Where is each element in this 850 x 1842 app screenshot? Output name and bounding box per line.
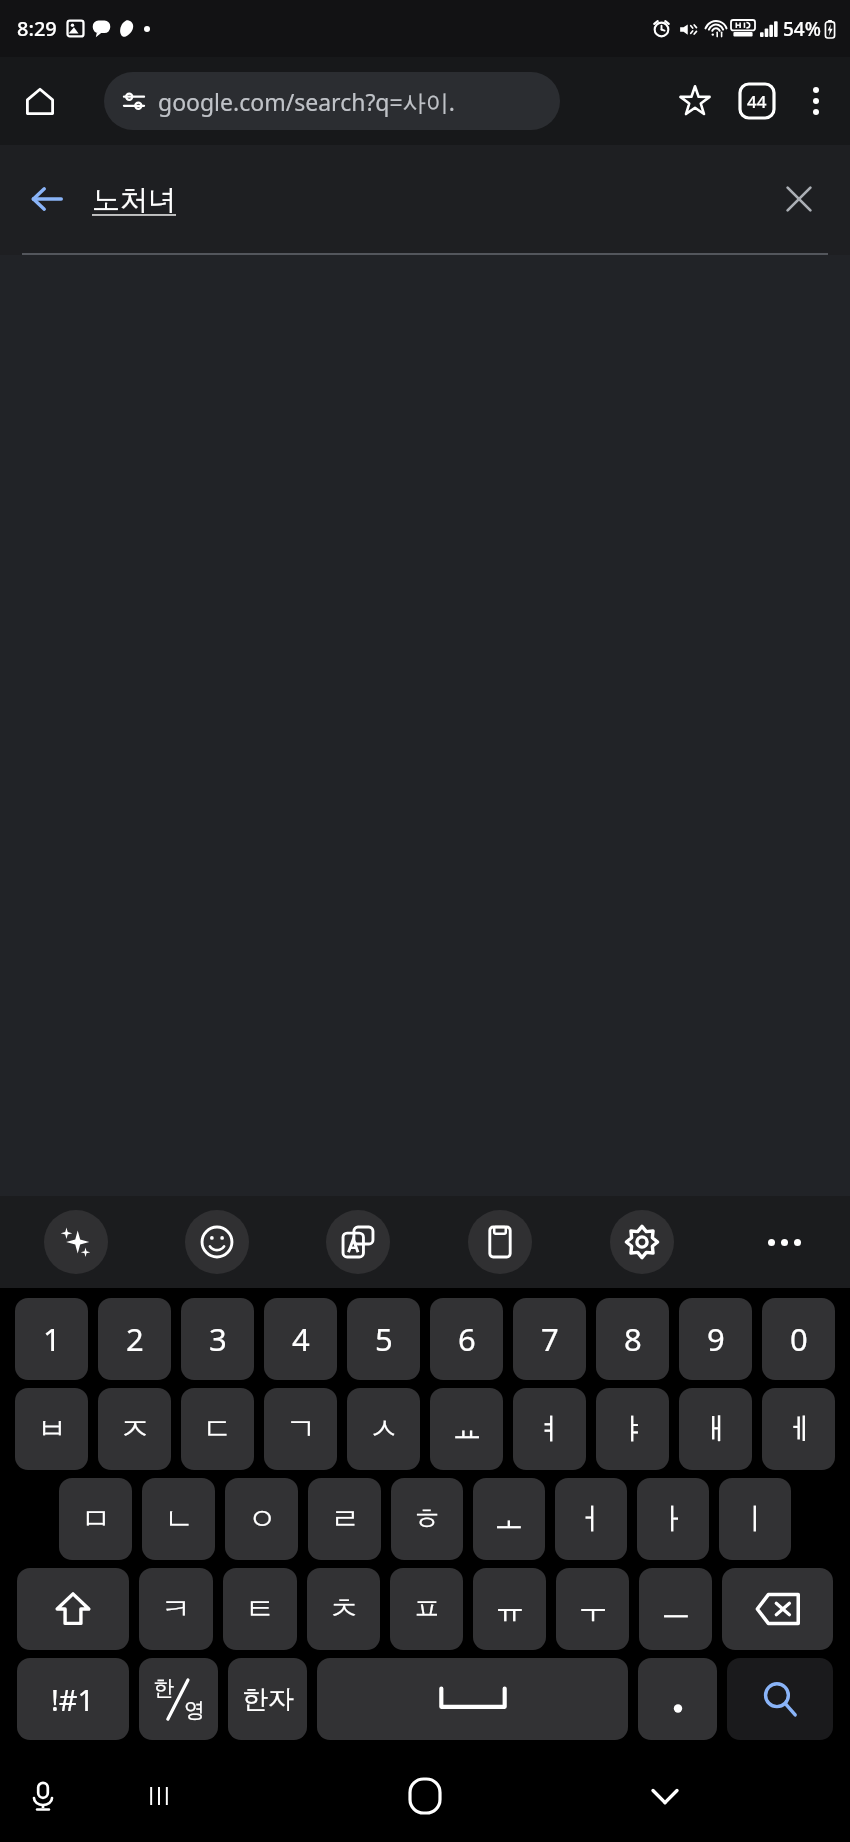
staticText: ㅇ (247, 1500, 277, 1538)
button[interactable]: Korean English toggle (139, 1658, 218, 1740)
button[interactable]: ㅡ (639, 1568, 712, 1650)
button[interactable]: Clear search (768, 168, 830, 230)
button[interactable]: Emoji (185, 1210, 249, 1274)
staticText: 노처녀 (92, 182, 176, 217)
staticText: !#1 (51, 1680, 95, 1719)
button[interactable]: Smart suggestions (44, 1210, 108, 1274)
staticText: 6 (458, 1318, 476, 1360)
staticText: ㅅ (369, 1410, 399, 1448)
staticText: ㅠ (495, 1590, 525, 1628)
staticText: 8:29 (17, 15, 57, 42)
button[interactable]: ㅕ (513, 1388, 586, 1470)
button[interactable]: !#1 (17, 1658, 129, 1740)
staticText: ㅍ (412, 1590, 442, 1628)
staticText: ㅐ (701, 1410, 731, 1448)
staticText: ㅛ (452, 1410, 482, 1448)
button[interactable]: ㅑ (596, 1388, 669, 1470)
staticText: 영 (184, 1697, 205, 1723)
staticText: ㄱ (286, 1410, 316, 1448)
button[interactable]: 6 (430, 1298, 503, 1380)
staticText: ㅑ (618, 1410, 648, 1448)
staticText: 9 (707, 1318, 725, 1360)
button[interactable]: Space (317, 1658, 628, 1740)
button[interactable]: More options (788, 70, 844, 132)
button[interactable]: 8 (596, 1298, 669, 1380)
staticText: 54% (783, 16, 821, 42)
staticText: ㄷ (203, 1410, 233, 1448)
staticText: ㅣ (740, 1500, 770, 1538)
button[interactable]: More keyboard options (752, 1210, 816, 1274)
button[interactable]: Search (727, 1658, 833, 1740)
button[interactable]: Home (10, 71, 70, 131)
button[interactable]: Recent apps (130, 1767, 188, 1825)
button[interactable]: ㅔ (762, 1388, 835, 1470)
button[interactable]: Settings (610, 1210, 674, 1274)
button[interactable]: Period (638, 1658, 717, 1740)
button[interactable]: ㅜ (556, 1568, 629, 1650)
button[interactable]: Bookmark (664, 70, 726, 132)
staticText: 44 (747, 90, 767, 113)
button[interactable]: ㅋ (139, 1568, 213, 1650)
staticText: ㅊ (329, 1590, 359, 1628)
staticText: 4 (292, 1318, 310, 1360)
button[interactable]: 4 (264, 1298, 337, 1380)
button[interactable]: ㄴ (142, 1478, 215, 1560)
button[interactable]: Home (394, 1765, 456, 1827)
button[interactable]: Backspace (722, 1568, 833, 1650)
button[interactable]: 한자 (228, 1658, 307, 1740)
button[interactable]: google.com/search?q=사이. (104, 72, 560, 130)
button[interactable]: Shift (17, 1568, 129, 1650)
staticText: ㅈ (120, 1410, 150, 1448)
button[interactable]: ㅣ (719, 1478, 791, 1560)
button[interactable]: ㄹ (308, 1478, 381, 1560)
button[interactable]: 5 (347, 1298, 420, 1380)
staticText: ㅓ (576, 1500, 606, 1538)
button[interactable]: 0 (762, 1298, 835, 1380)
button[interactable]: ㅈ (98, 1388, 171, 1470)
button[interactable]: ㅛ (430, 1388, 503, 1470)
staticText: ㅏ (658, 1500, 688, 1538)
staticText: 1 (43, 1318, 61, 1360)
button[interactable]: 3 (181, 1298, 254, 1380)
button[interactable]: ㅅ (347, 1388, 420, 1470)
button[interactable]: ㅐ (679, 1388, 752, 1470)
staticText: 5 (375, 1318, 393, 1360)
staticText: 2 (126, 1318, 144, 1360)
button[interactable]: ㄷ (181, 1388, 254, 1470)
staticText: google.com/search?q=사이. (158, 86, 455, 117)
button[interactable]: ㅊ (307, 1568, 380, 1650)
button[interactable]: ㅓ (555, 1478, 627, 1560)
staticText: ㅋ (161, 1590, 191, 1628)
staticText: 8 (624, 1318, 642, 1360)
button[interactable]: 1 (15, 1298, 88, 1380)
button[interactable]: 2 (98, 1298, 171, 1380)
button[interactable]: ㅠ (473, 1568, 546, 1650)
button[interactable]: Hide keyboard (636, 1767, 694, 1825)
staticText: 0 (790, 1318, 808, 1360)
staticText: ㅡ (661, 1590, 691, 1628)
staticText: ㄴ (164, 1500, 194, 1538)
button[interactable]: ㅏ (637, 1478, 709, 1560)
button[interactable]: Tabs: 44 (726, 70, 788, 132)
button[interactable]: Clipboard (468, 1210, 532, 1274)
staticText: 7 (541, 1318, 559, 1360)
button[interactable]: Translate (326, 1210, 390, 1274)
staticText: ㅔ (784, 1410, 814, 1448)
button[interactable]: ㅌ (223, 1568, 297, 1650)
button[interactable]: ㅇ (225, 1478, 298, 1560)
button[interactable]: Back (16, 168, 78, 230)
staticText: ㅌ (245, 1590, 275, 1628)
button[interactable]: Voice input (14, 1767, 72, 1825)
button[interactable]: ㅁ (59, 1478, 132, 1560)
button[interactable]: ㅍ (390, 1568, 463, 1650)
button[interactable]: ㄱ (264, 1388, 337, 1470)
staticText: ㄹ (330, 1500, 360, 1538)
staticText: ㅂ (37, 1410, 67, 1448)
button[interactable]: 9 (679, 1298, 752, 1380)
staticText: 한자 (242, 1683, 294, 1716)
button[interactable]: ㅂ (15, 1388, 88, 1470)
button[interactable]: ㅎ (391, 1478, 463, 1560)
button[interactable]: 7 (513, 1298, 586, 1380)
button[interactable]: ㅗ (473, 1478, 545, 1560)
staticText: 3 (209, 1318, 227, 1360)
